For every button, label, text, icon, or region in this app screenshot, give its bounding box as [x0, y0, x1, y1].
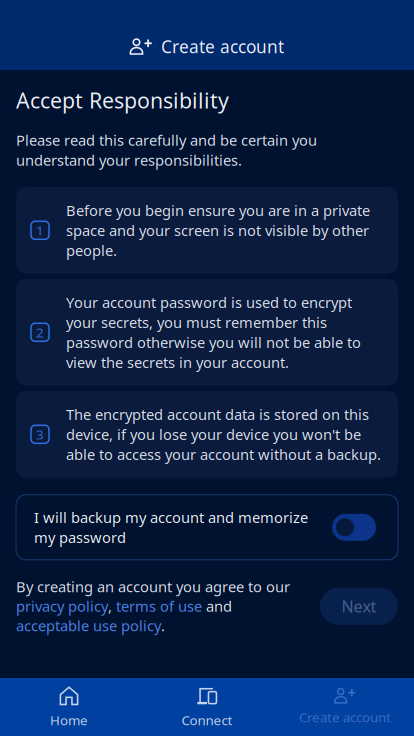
staticText: acceptable use policy — [16, 616, 161, 635]
staticText: Connect — [181, 711, 232, 729]
staticText: By creating an account you agree to our — [16, 577, 290, 596]
staticText: Accept Responsibility — [16, 86, 229, 114]
button[interactable]: Home — [0, 678, 138, 736]
button[interactable]: Next — [320, 588, 398, 625]
button[interactable]: Connect — [138, 678, 276, 736]
staticText: Your account password is used to encrypt… — [66, 293, 361, 372]
staticText: 1 — [36, 221, 44, 239]
button[interactable]: privacy policy — [16, 596, 108, 616]
button[interactable]: Create account — [276, 678, 414, 736]
staticText: 3 — [36, 425, 44, 443]
staticText: Home — [50, 711, 88, 729]
staticText: 2 — [36, 323, 44, 341]
staticText: I will backup my account and memorize my… — [34, 508, 308, 547]
staticText: The encrypted account data is stored on … — [66, 405, 381, 464]
staticText: Please read this carefully and be certai… — [16, 130, 317, 170]
staticText: . — [161, 616, 165, 635]
staticText: Next — [341, 596, 376, 617]
staticText: and — [202, 596, 232, 616]
staticText: Create account — [299, 708, 391, 726]
staticText: privacy policy — [16, 596, 108, 616]
button[interactable]: acceptable use policy — [16, 616, 161, 635]
staticText: terms of use — [116, 596, 202, 616]
staticText: Before you begin ensure you are in a pri… — [66, 201, 370, 260]
button[interactable]: terms of use — [116, 596, 202, 616]
staticText: Create account — [161, 35, 284, 58]
staticText: , — [108, 596, 116, 616]
button[interactable]: I will backup my account and memorize my… — [16, 495, 398, 560]
button[interactable]: Create account — [0, 0, 414, 70]
